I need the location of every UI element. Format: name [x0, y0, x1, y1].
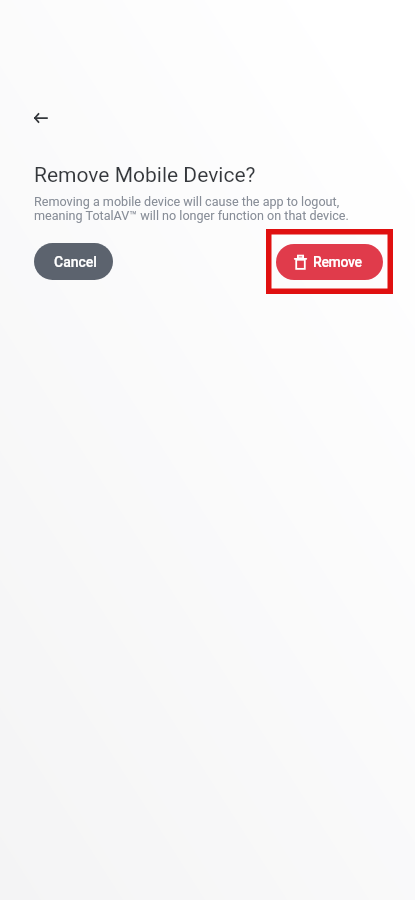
staticText: Remove Mobile Device? — [34, 163, 256, 188]
button[interactable]: Remove — [276, 244, 383, 280]
staticText: Removing a mobile device will cause the … — [34, 194, 349, 223]
staticText: Cancel — [54, 254, 97, 270]
staticText: Remove — [313, 254, 362, 270]
button[interactable]: Back — [24, 101, 57, 134]
button[interactable]: Cancel — [34, 243, 113, 280]
